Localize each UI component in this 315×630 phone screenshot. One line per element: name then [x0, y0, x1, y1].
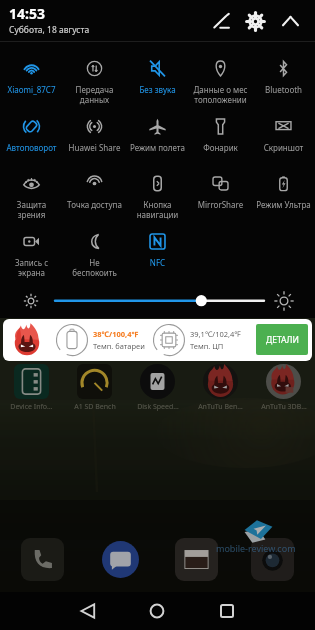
staticText: Передача данных [63, 84, 126, 105]
staticText: Не беспокоить [63, 257, 126, 278]
button[interactable]: Device Info… [0, 364, 63, 416]
button[interactable]: gallery [175, 538, 218, 581]
button[interactable]: phone [21, 538, 64, 581]
button[interactable]: Фонарик [189, 100, 252, 157]
staticText: mobile-review.com [216, 542, 296, 554]
button[interactable]: Не беспокоить [63, 215, 126, 272]
button[interactable]: Bluetooth [252, 42, 315, 99]
button[interactable]: Скриншот [252, 100, 315, 157]
staticText: AnTuTu 3DB… [261, 402, 307, 412]
staticText: Без звука [126, 84, 189, 95]
staticText: Режим Ультра [252, 199, 315, 210]
staticText: Запись с экрана [0, 257, 63, 278]
staticText: A1 SD Bench [74, 402, 116, 412]
button[interactable]: Без звука [126, 42, 189, 99]
staticText: Режим полета [126, 142, 189, 153]
button[interactable]: Данные о мес тоположении [189, 42, 252, 99]
staticText: NFC [126, 257, 189, 268]
staticText: Disk Speed… [137, 402, 179, 412]
staticText: Точка доступа [63, 199, 126, 210]
button[interactable]: Режим полета [126, 100, 189, 157]
staticText: Данные о мес тоположении [189, 84, 252, 105]
button[interactable]: Disk Speed… [126, 364, 189, 416]
staticText: ДЕТАЛИ [266, 334, 299, 346]
button[interactable]: Автоповорот [0, 100, 63, 157]
button[interactable]: A1 SD Bench [63, 364, 126, 416]
staticText: 38℃/100,4℉ [93, 329, 139, 339]
button[interactable]: Запись с экрана [0, 215, 63, 272]
staticText: Bluetooth [252, 84, 315, 95]
button[interactable]: Huawei Share [63, 100, 126, 157]
staticText: Защита зрения [0, 199, 63, 220]
button[interactable]: Кнопка навигации [126, 157, 189, 214]
button[interactable]: camera [251, 538, 294, 581]
button[interactable]: Collapse [276, 8, 305, 35]
staticText: Скриншот [252, 142, 315, 153]
button[interactable] [3, 319, 312, 361]
staticText: Суббота, 18 августа [9, 24, 90, 36]
button[interactable]: Home [139, 593, 175, 629]
button[interactable]: AnTuTu 3DB… [252, 364, 315, 416]
staticText: Темп. батареи [93, 341, 145, 351]
staticText: Xiaomi_87C7 [0, 84, 63, 95]
staticText: Device Info… [10, 402, 53, 412]
button[interactable]: NFC [126, 215, 189, 272]
staticText: MirrorShare [189, 199, 252, 210]
button[interactable]: MirrorShare [189, 157, 252, 214]
staticText: AnTuTu Ben… [198, 402, 243, 412]
staticText: 14:53 [9, 4, 45, 23]
button[interactable]: Settings [241, 8, 270, 35]
staticText: Темп. ЦП [190, 341, 224, 351]
button[interactable]: Защита зрения [0, 157, 63, 214]
staticText: Huawei Share [63, 142, 126, 153]
button[interactable]: Точка доступа [63, 157, 126, 214]
staticText: 39,1℃/102,4℉ [190, 329, 241, 339]
staticText: Кнопка навигации [126, 199, 189, 220]
button[interactable]: Back [70, 593, 106, 629]
button[interactable]: messages [99, 538, 142, 581]
button[interactable]: Режим Ультра [252, 157, 315, 214]
button[interactable]: ДЕТАЛИ [256, 324, 308, 355]
button[interactable]: Recents [209, 593, 245, 629]
button[interactable]: Передача данных [63, 42, 126, 99]
button[interactable]: AnTuTu Ben… [189, 364, 252, 416]
staticText: Фонарик [189, 142, 252, 153]
staticText: Автоповорот [0, 142, 63, 153]
button[interactable]: Xiaomi_87C7 [0, 42, 63, 99]
button[interactable]: Edit [207, 8, 236, 35]
